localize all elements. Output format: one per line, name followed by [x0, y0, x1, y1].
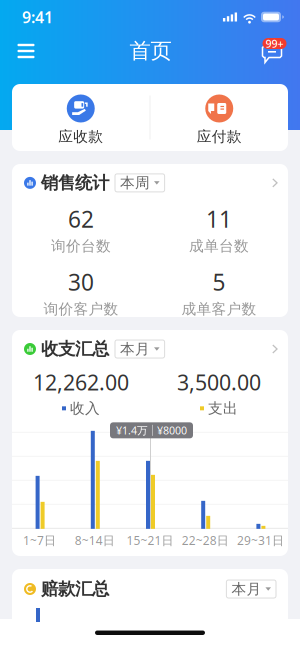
staticText: 本周	[120, 174, 150, 192]
staticText: 9:41	[22, 6, 53, 28]
staticText: 8~14日	[75, 532, 115, 548]
staticText: 99+	[265, 36, 283, 51]
staticText: 15~21日	[126, 532, 173, 548]
staticText: 收支汇总	[41, 338, 109, 360]
staticText: 首页	[129, 38, 171, 64]
staticText: 成单台数	[189, 237, 249, 255]
button[interactable]: More	[264, 338, 286, 360]
staticText: 62	[68, 204, 94, 234]
staticText: 3,500.00	[177, 368, 261, 396]
button[interactable]: 本月	[226, 580, 276, 598]
staticText: 询价台数	[51, 237, 111, 255]
button[interactable]: Messages	[255, 32, 293, 70]
staticText: 30	[68, 267, 94, 297]
staticText: 1~7日	[23, 532, 56, 548]
staticText: 5	[212, 267, 225, 297]
staticText: 询价客户数	[43, 300, 118, 318]
staticText: 22~28日	[182, 532, 229, 548]
button[interactable]: 应付款	[150, 80, 288, 154]
button[interactable]: 本周	[115, 174, 165, 192]
staticText: 收入	[70, 399, 100, 417]
staticText: 12,262.00	[33, 368, 129, 396]
staticText: 应付款	[197, 127, 242, 145]
staticText: 应收款	[58, 127, 103, 145]
button[interactable]: More	[264, 172, 286, 194]
staticText: 本月	[120, 340, 150, 358]
button[interactable]: 应收款	[12, 80, 149, 154]
staticText: 29~31日	[237, 532, 284, 548]
button[interactable]: Menu	[6, 31, 46, 71]
staticText: 本月	[231, 580, 261, 598]
staticText: 支出	[208, 399, 238, 417]
staticText: ¥8000	[157, 423, 187, 437]
staticText: 赔款汇总	[41, 578, 109, 600]
staticText: 销售统计	[41, 172, 109, 193]
staticText: ¥1.4万	[116, 423, 148, 437]
staticText: 成单客户数	[181, 300, 256, 318]
button[interactable]: 本月	[115, 340, 165, 358]
staticText: 11	[206, 204, 232, 234]
